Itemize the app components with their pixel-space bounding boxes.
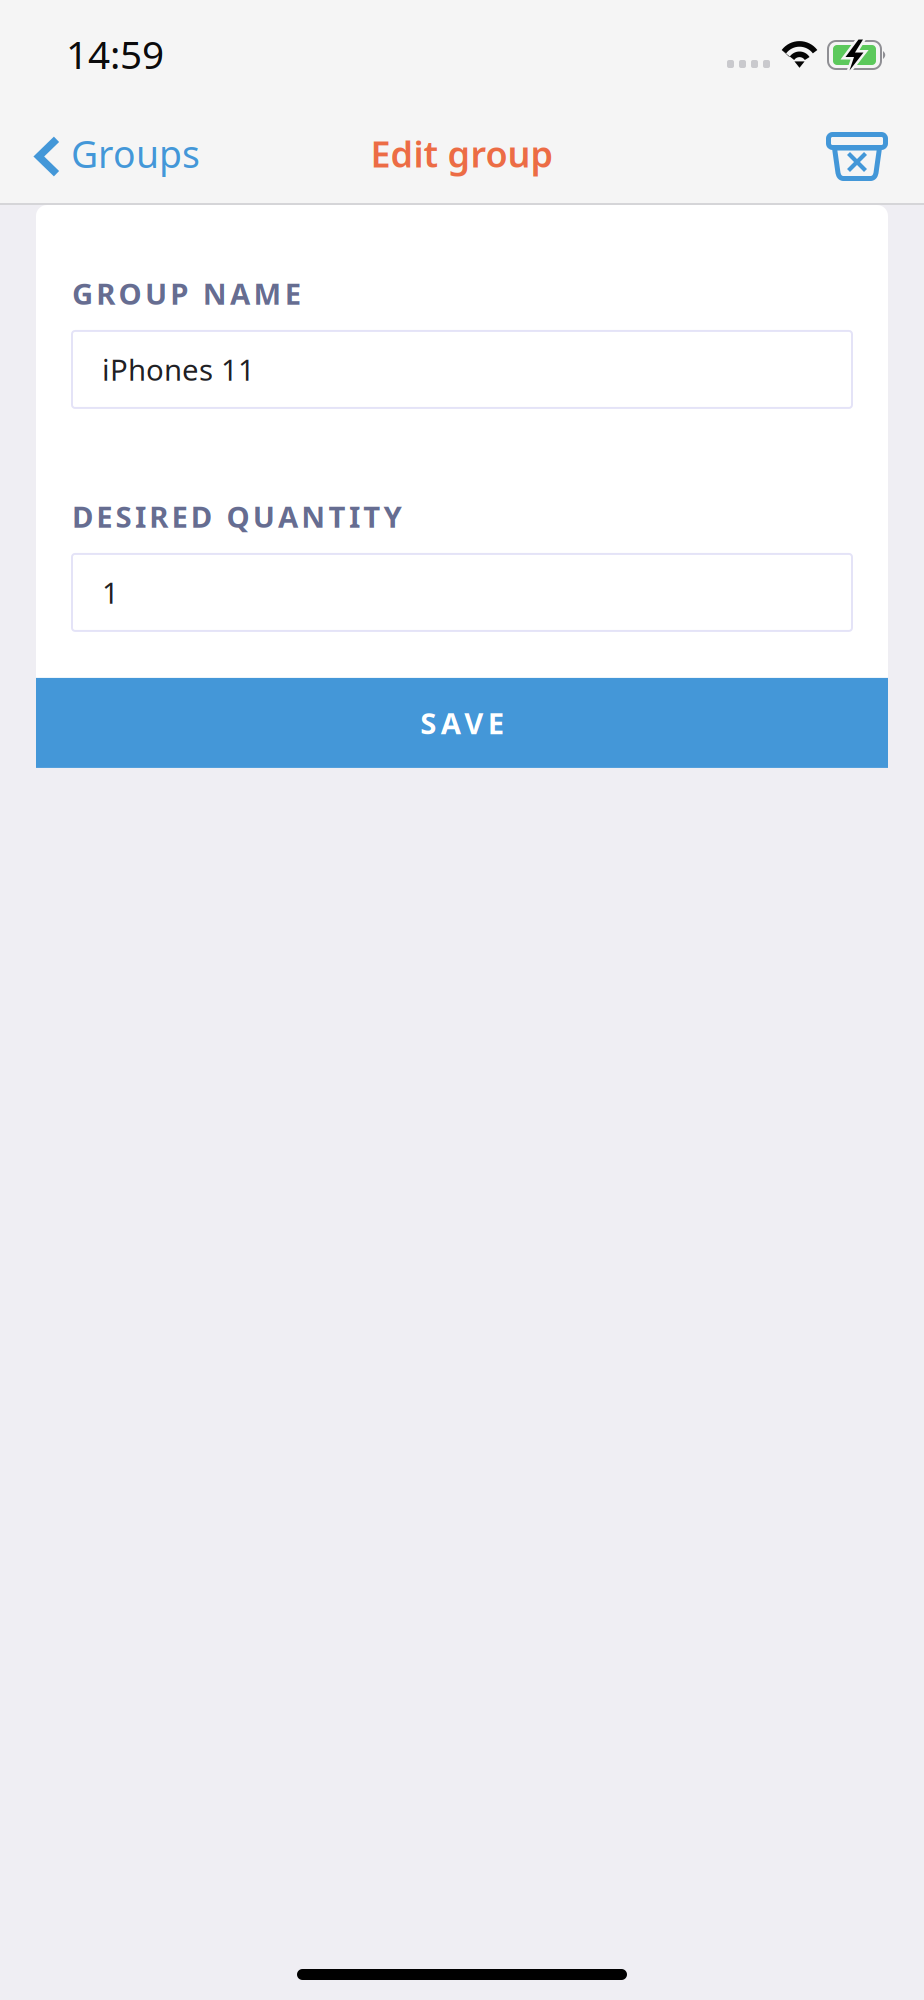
staticText: 1 bbox=[102, 573, 119, 612]
button[interactable]: SAVE bbox=[36, 678, 888, 768]
button[interactable]: Groups bbox=[0, 108, 216, 205]
staticText: SAVE bbox=[420, 703, 504, 742]
staticText: Groups bbox=[71, 129, 200, 178]
button[interactable]: Delete group bbox=[810, 108, 924, 205]
staticText: iPhones 11 bbox=[102, 350, 255, 389]
staticText: DESIRED QUANTITY bbox=[72, 497, 401, 536]
staticText: 14:59 bbox=[66, 28, 164, 80]
staticText: Edit group bbox=[370, 130, 553, 177]
staticText: GROUP NAME bbox=[72, 274, 301, 313]
